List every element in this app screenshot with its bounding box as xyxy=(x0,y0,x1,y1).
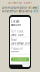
staticText: Password xyxy=(11,47,23,50)
staticText: Continue xyxy=(13,58,27,61)
staticText: Create account xyxy=(11,20,21,27)
staticText: Full name xyxy=(11,30,24,33)
staticText: Lorem ipsum dolor sit amet consectetur a… xyxy=(1,6,38,13)
staticText: Email xyxy=(11,38,17,42)
staticText: •••••••• xyxy=(11,50,19,54)
staticText: jane@mail.com xyxy=(11,42,30,45)
staticText: Jane Doe xyxy=(11,33,24,37)
button[interactable]: Continue xyxy=(11,57,29,61)
staticText: GET STARTED TODAY xyxy=(7,1,32,4)
